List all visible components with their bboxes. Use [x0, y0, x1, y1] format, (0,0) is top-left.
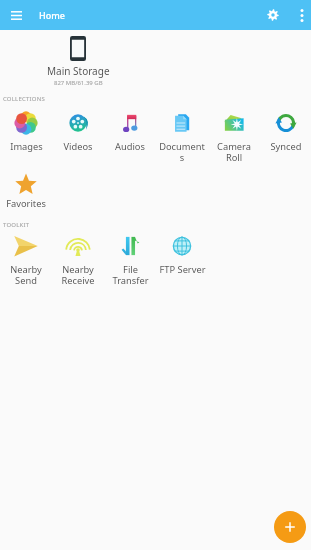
- button[interactable]: Settings: [262, 4, 284, 26]
- staticText: Home: [39, 9, 65, 21]
- button[interactable]: Audios: [104, 111, 156, 153]
- staticText: File Transfer: [112, 263, 149, 287]
- button[interactable]: Menu: [6, 5, 26, 25]
- staticText: Videos: [63, 140, 93, 153]
- button[interactable]: File Transfer: [104, 234, 156, 287]
- button[interactable]: Camera Roll: [208, 111, 260, 164]
- button[interactable]: Images: [0, 111, 52, 153]
- button[interactable]: FTP Server: [156, 234, 208, 276]
- staticText: Favorites: [6, 197, 46, 210]
- button[interactable]: Add: [274, 511, 306, 543]
- button[interactable]: Main Storage: [38, 36, 118, 87]
- staticText: Images: [10, 140, 43, 153]
- staticText: Nearby Send: [10, 263, 42, 287]
- staticText: Audios: [115, 140, 145, 153]
- staticText: Synced: [270, 140, 302, 153]
- button[interactable]: Favorites: [0, 168, 52, 210]
- button[interactable]: Synced: [260, 111, 311, 153]
- staticText: Nearby Receive: [61, 263, 95, 287]
- staticText: Camera Roll: [217, 140, 251, 164]
- staticText: 827 MB/61.39 GB: [54, 79, 103, 87]
- button[interactable]: More options: [294, 7, 310, 23]
- staticText: TOOLKIT: [3, 221, 30, 229]
- staticText: FTP Server: [159, 263, 206, 276]
- staticText: Main Storage: [47, 64, 110, 78]
- staticText: Document s: [159, 140, 205, 164]
- button[interactable]: Nearby Send: [0, 234, 52, 287]
- button[interactable]: Nearby Receive: [52, 234, 104, 287]
- button[interactable]: Videos: [52, 111, 104, 153]
- staticText: COLLECTIONS: [3, 95, 45, 103]
- button[interactable]: Document s: [156, 111, 208, 164]
